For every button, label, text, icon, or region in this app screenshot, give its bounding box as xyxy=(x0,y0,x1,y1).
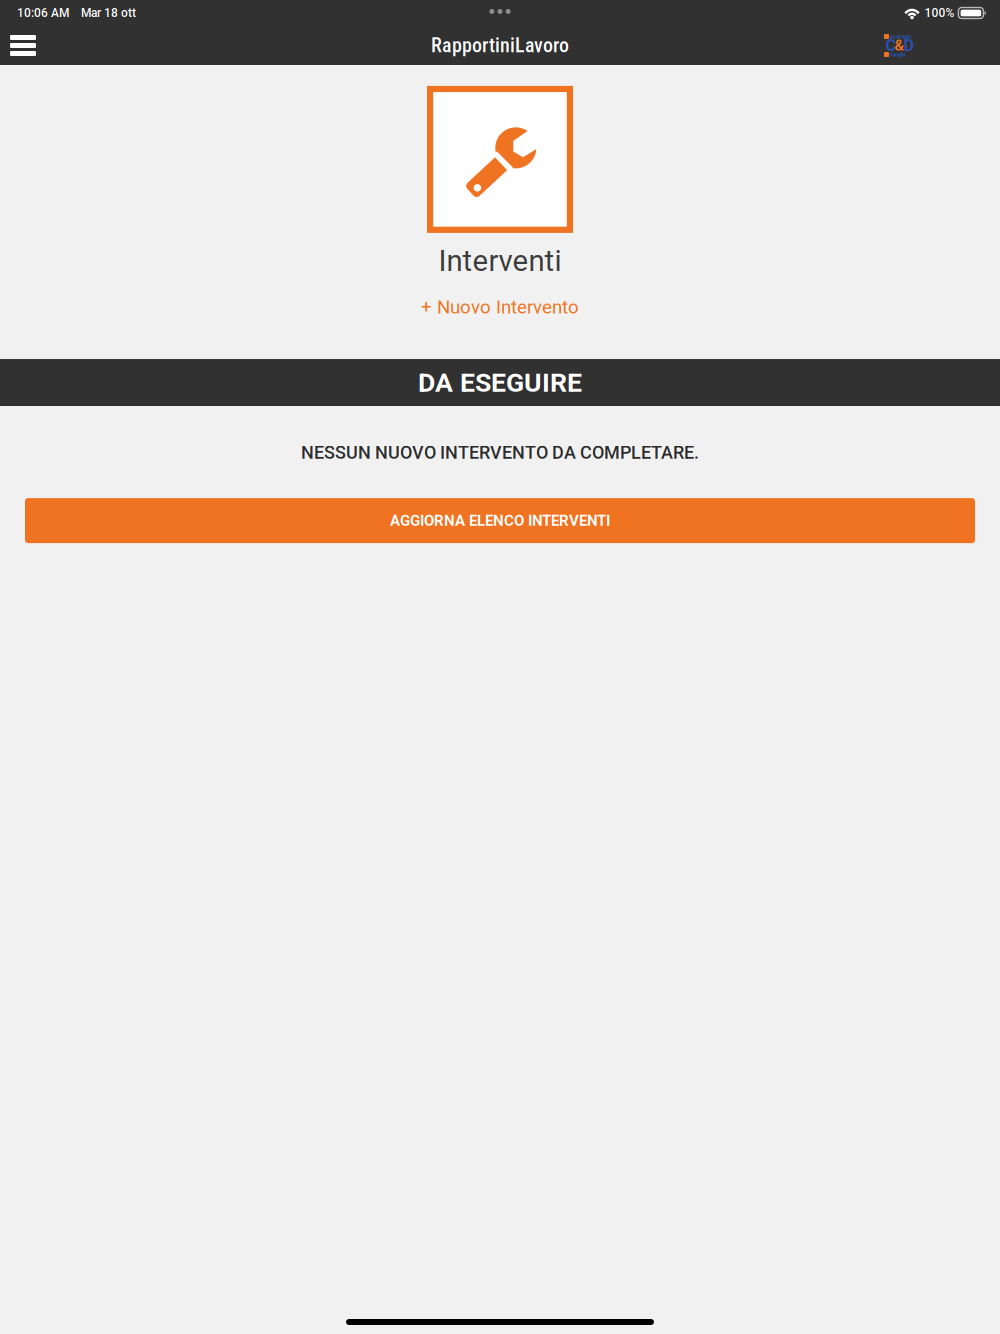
staticText: NESSUN NUOVO INTERVENTO DA COMPLETARE. xyxy=(301,442,699,463)
staticText: Interventi xyxy=(438,244,561,278)
staticText: + Nuovo Intervento xyxy=(421,296,579,318)
staticText: funghi xyxy=(890,51,906,58)
staticText: C D xyxy=(885,36,913,55)
staticText: AGGIORNA ELENCO INTERVENTI xyxy=(390,512,610,529)
staticText: RapportiniLavoro xyxy=(431,34,569,57)
staticText: Mar 18 ott xyxy=(81,6,136,20)
staticText: & xyxy=(894,37,904,54)
button[interactable]: AGGIORNA ELENCO INTERVENTI xyxy=(25,498,975,543)
button[interactable]: Interventi xyxy=(430,89,570,230)
button[interactable]: + Nuovo Intervento xyxy=(421,296,579,318)
staticText: 100% xyxy=(924,6,954,20)
staticText: ecologic xyxy=(890,33,912,40)
staticText: 10:06 AM xyxy=(17,6,69,20)
button[interactable]: Menu xyxy=(0,26,56,65)
button[interactable]: Ecologic C&D Funghi xyxy=(876,26,923,65)
staticText: DA ESEGUIRE xyxy=(418,367,582,398)
